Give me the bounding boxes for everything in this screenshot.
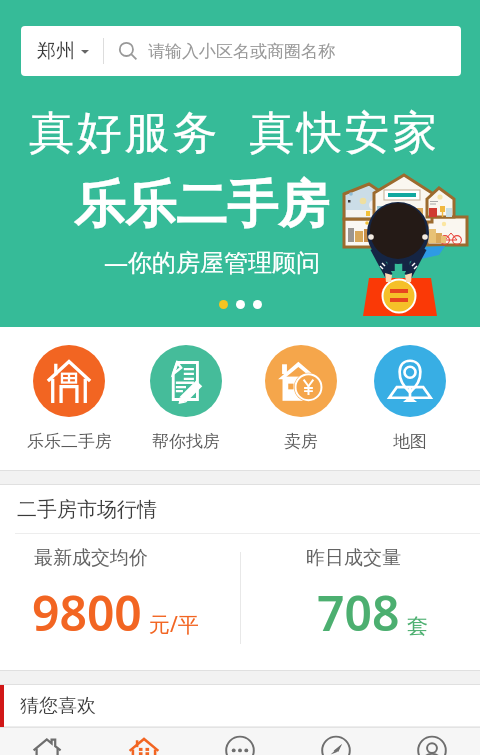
button[interactable]: 首页 — [0, 727, 96, 755]
staticText: —你的房屋管理顾问 — [104, 245, 320, 278]
staticText: 帮你找房 — [152, 431, 220, 452]
button[interactable]: 我的 — [384, 727, 480, 755]
button[interactable]: 卖房 — [241, 327, 361, 452]
staticText: 元/平 — [149, 610, 199, 639]
button[interactable]: 帮你找房 — [126, 327, 246, 452]
staticText: 昨日成交量 — [306, 546, 401, 570]
button[interactable]: 发现 — [288, 727, 384, 755]
button[interactable]: 猜您喜欢 — [0, 685, 480, 727]
staticText: 郑州 — [37, 39, 75, 63]
staticText: 套 — [407, 613, 428, 639]
staticText: 乐乐二手房 — [74, 173, 329, 237]
staticText: 708 — [317, 580, 400, 645]
button[interactable]: 房源 — [96, 727, 192, 755]
staticText: 乐乐二手房 — [27, 431, 112, 452]
button[interactable]: 更多 — [192, 727, 288, 755]
staticText: 请输入小区名或商圈名称 — [148, 41, 335, 62]
staticText: 地图 — [393, 431, 427, 452]
staticText: 二手房市场行情 — [17, 497, 157, 522]
staticText: 最新成交均价 — [34, 546, 148, 570]
button[interactable]: 郑州 — [21, 26, 461, 76]
staticText: 真好服务 真快安家 — [29, 100, 441, 161]
staticText: 猜您喜欢 — [20, 694, 96, 718]
button[interactable]: 乐乐二手房 — [9, 327, 129, 452]
staticText: 9800 — [32, 580, 142, 645]
button[interactable]: 地图 — [350, 327, 470, 452]
staticText: 卖房 — [284, 431, 318, 452]
